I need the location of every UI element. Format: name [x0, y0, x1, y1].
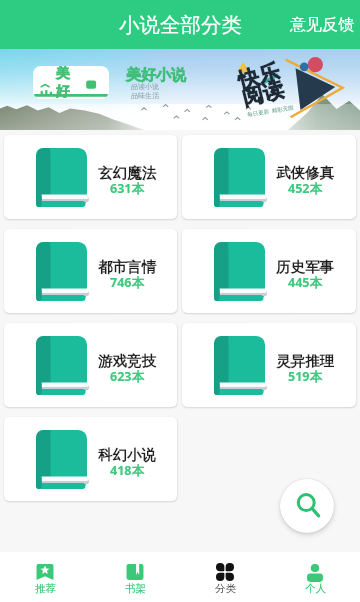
- staticText: 519本: [288, 368, 322, 385]
- staticText: 灵异推理: [276, 352, 334, 370]
- staticText: 历史军事: [276, 258, 334, 276]
- staticText: 445本: [288, 274, 322, 291]
- button[interactable]: 游戏竞技: [4, 323, 177, 407]
- staticText: 游戏竞技: [98, 352, 156, 370]
- button[interactable]: 书架: [90, 552, 180, 602]
- staticText: 分类: [215, 582, 236, 595]
- staticText: 好: [56, 83, 70, 98]
- button[interactable]: 科幻小说: [4, 417, 177, 501]
- staticText: 意见反馈: [290, 15, 354, 35]
- staticText: 美: [56, 66, 70, 83]
- button[interactable]: 分类: [180, 552, 270, 602]
- button[interactable]: 历史军事: [182, 229, 356, 313]
- staticText: 每日更新 精彩无限: [247, 103, 294, 119]
- staticText: 都市言情: [98, 258, 156, 276]
- button[interactable]: 都市言情: [4, 229, 177, 313]
- staticText: 玄幻魔法: [98, 164, 156, 182]
- staticText: 小说全部分类: [119, 12, 242, 38]
- staticText: 书架: [125, 582, 146, 595]
- staticText: 美好小说: [126, 66, 186, 85]
- staticText: 631本: [110, 180, 144, 197]
- button[interactable]: 个人: [270, 552, 360, 602]
- button[interactable]: 推荐: [0, 552, 90, 602]
- button[interactable]: 灵异推理: [182, 323, 356, 407]
- staticText: 623本: [110, 368, 144, 385]
- staticText: 746本: [110, 274, 144, 291]
- button[interactable]: Search: [280, 479, 334, 533]
- staticText: 452本: [288, 180, 322, 197]
- staticText: 品读小说 品味生活: [131, 82, 159, 100]
- staticText: 个人: [305, 582, 326, 595]
- button[interactable]: 美: [0, 49, 360, 130]
- staticText: 推荐: [35, 582, 56, 595]
- button[interactable]: 玄幻魔法: [4, 135, 177, 219]
- staticText: 武侠修真: [276, 164, 334, 182]
- staticText: 快乐 阅读: [235, 59, 287, 112]
- staticText: 科幻小说: [98, 446, 156, 464]
- button[interactable]: 意见反馈: [280, 3, 360, 47]
- button[interactable]: 武侠修真: [182, 135, 356, 219]
- staticText: 418本: [110, 462, 144, 479]
